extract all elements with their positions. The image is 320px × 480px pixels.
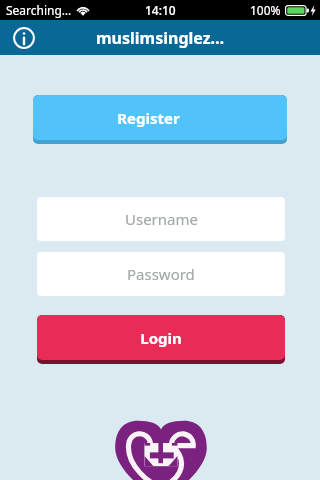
- staticText: Login: [140, 328, 182, 348]
- button[interactable]: Info: [13, 27, 35, 49]
- staticText: Register: [117, 108, 180, 128]
- staticText: Password: [127, 264, 195, 284]
- staticText: muslimsinglez…: [96, 27, 225, 49]
- staticText: 14:10: [145, 2, 176, 18]
- staticText: Username: [125, 209, 198, 229]
- button[interactable]: Username: [37, 197, 285, 241]
- staticText: 100%: [250, 2, 281, 18]
- staticText: Searching…: [6, 2, 72, 18]
- button[interactable]: Register: [33, 95, 287, 144]
- button[interactable]: Password: [37, 252, 285, 296]
- button[interactable]: Login: [37, 315, 285, 364]
